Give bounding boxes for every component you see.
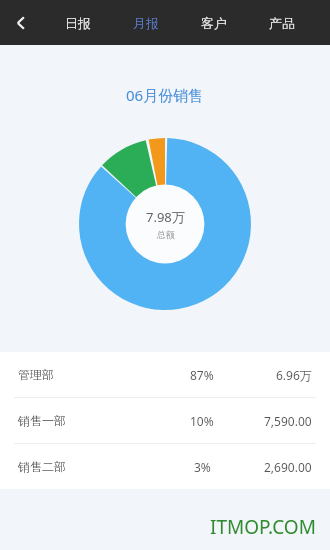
button[interactable]: 销售二部 [0,444,330,489]
button[interactable]: Back [0,0,42,45]
button[interactable]: 月报 [112,0,180,45]
staticText: 管理部 [18,367,172,382]
staticText: 客户 [201,15,227,31]
button[interactable]: 管理部 [0,352,330,398]
button[interactable]: 销售一部 [0,398,330,444]
button[interactable]: 日报 [44,0,112,45]
staticText: 7.98万 [146,208,185,226]
staticText: 月报 [133,15,159,31]
staticText: 销售二部 [18,459,172,474]
button[interactable]: 产品 [248,0,316,45]
staticText: 10% [190,413,214,429]
staticText: 3% [194,459,211,475]
staticText: 总额 [157,229,175,240]
staticText: 产品 [269,15,295,31]
staticText: 87% [190,367,214,383]
staticText: 日报 [65,15,91,31]
staticText: 2,690.00 [264,459,312,475]
staticText: 6.96万 [276,367,312,383]
staticText: 06月份销售 [126,85,204,105]
staticText: 销售一部 [18,413,172,428]
staticText: 7,590.00 [264,413,312,429]
staticText: ITMOP.COM [210,514,316,540]
button[interactable]: 客户 [180,0,248,45]
